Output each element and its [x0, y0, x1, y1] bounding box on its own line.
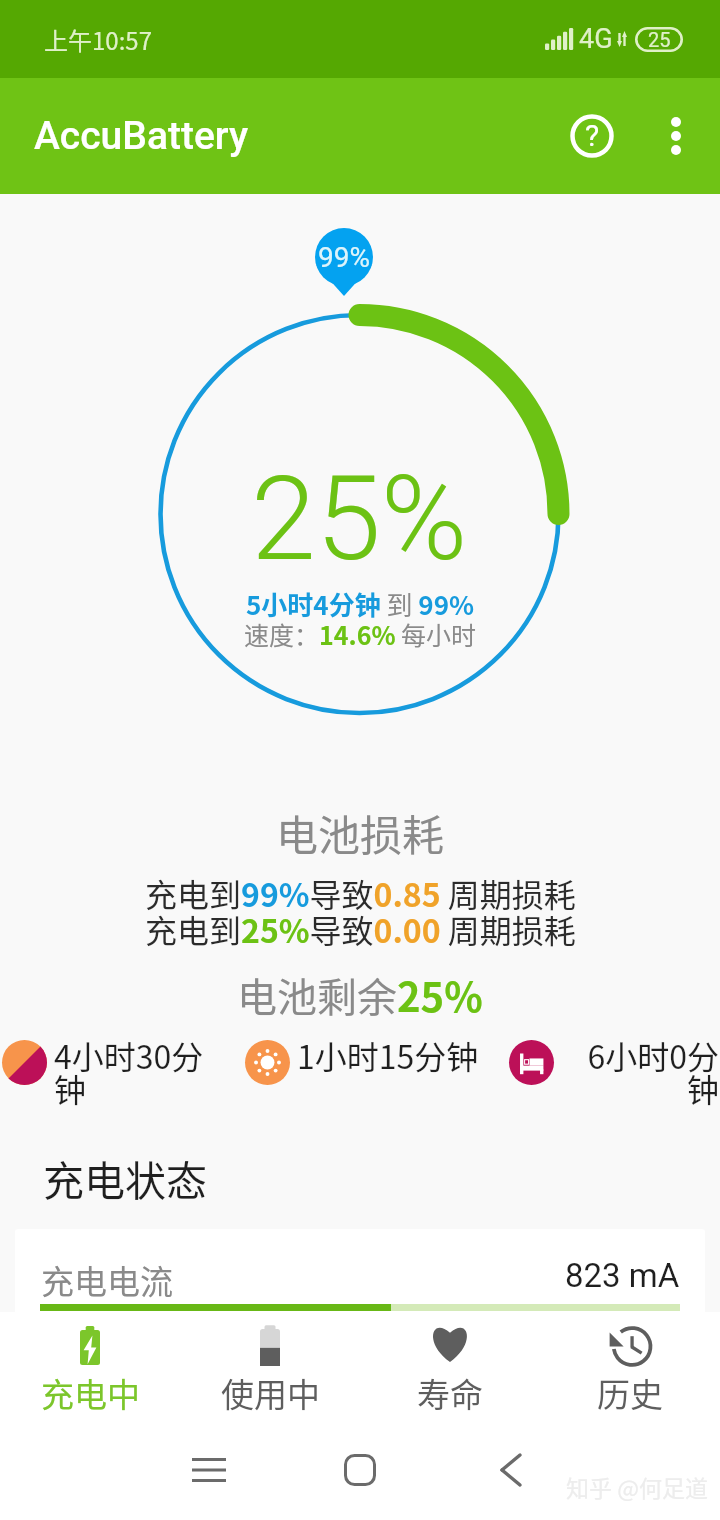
staticText: 充电到25%导致0.00 周期损耗 — [145, 906, 576, 952]
button[interactable]: Home — [335, 1445, 385, 1495]
staticText: 充电到99%导致0.85 周期损耗 — [145, 870, 576, 916]
staticText: 99% — [318, 241, 370, 274]
staticText: 速度：14.6% 每小时 — [244, 616, 477, 652]
staticText: 历史 — [597, 1369, 663, 1417]
button[interactable]: 充电中 — [0, 1312, 180, 1420]
button[interactable]: More options — [644, 104, 708, 168]
staticText: 充电中 — [41, 1369, 140, 1417]
staticText: 电池剩余25% — [237, 966, 483, 1024]
staticText: 充电电流 — [41, 1256, 173, 1304]
button[interactable]: Help — [556, 100, 628, 172]
staticText: 充电状态 — [43, 1148, 207, 1207]
button[interactable]: 使用中 — [180, 1312, 360, 1420]
button[interactable]: 充电电流 — [15, 1229, 705, 1319]
button[interactable]: 历史 — [540, 1312, 720, 1420]
staticText: 使用中 — [221, 1369, 320, 1417]
staticText: 上午10:57 — [44, 22, 152, 57]
staticText: ? — [585, 118, 600, 153]
staticText: 电池损耗 — [276, 802, 445, 863]
button[interactable]: 1小时15分钟 — [245, 1032, 487, 1078]
staticText: 知乎 @何足道 — [566, 1470, 708, 1503]
staticText: 6小时0分钟 — [587, 1032, 719, 1112]
staticText: 4G — [579, 23, 613, 55]
staticText: 25% — [251, 450, 468, 587]
button[interactable]: 寿命 — [360, 1312, 540, 1420]
staticText: 1小时15分钟 — [297, 1032, 487, 1078]
staticText: 寿命 — [417, 1369, 483, 1417]
staticText: 5小时4分钟 到 99% — [246, 585, 475, 623]
staticText: 4小时30分钟 — [54, 1032, 232, 1112]
button[interactable]: 4小时30分钟 — [2, 1032, 232, 1112]
staticText: AccuBattery — [34, 113, 249, 159]
staticText: 25 — [648, 28, 671, 51]
staticText: 823 mA — [565, 1256, 680, 1295]
button[interactable]: 6小时0分钟 — [509, 1032, 719, 1112]
button[interactable]: Recents — [184, 1445, 234, 1495]
button[interactable]: Back — [486, 1445, 536, 1495]
